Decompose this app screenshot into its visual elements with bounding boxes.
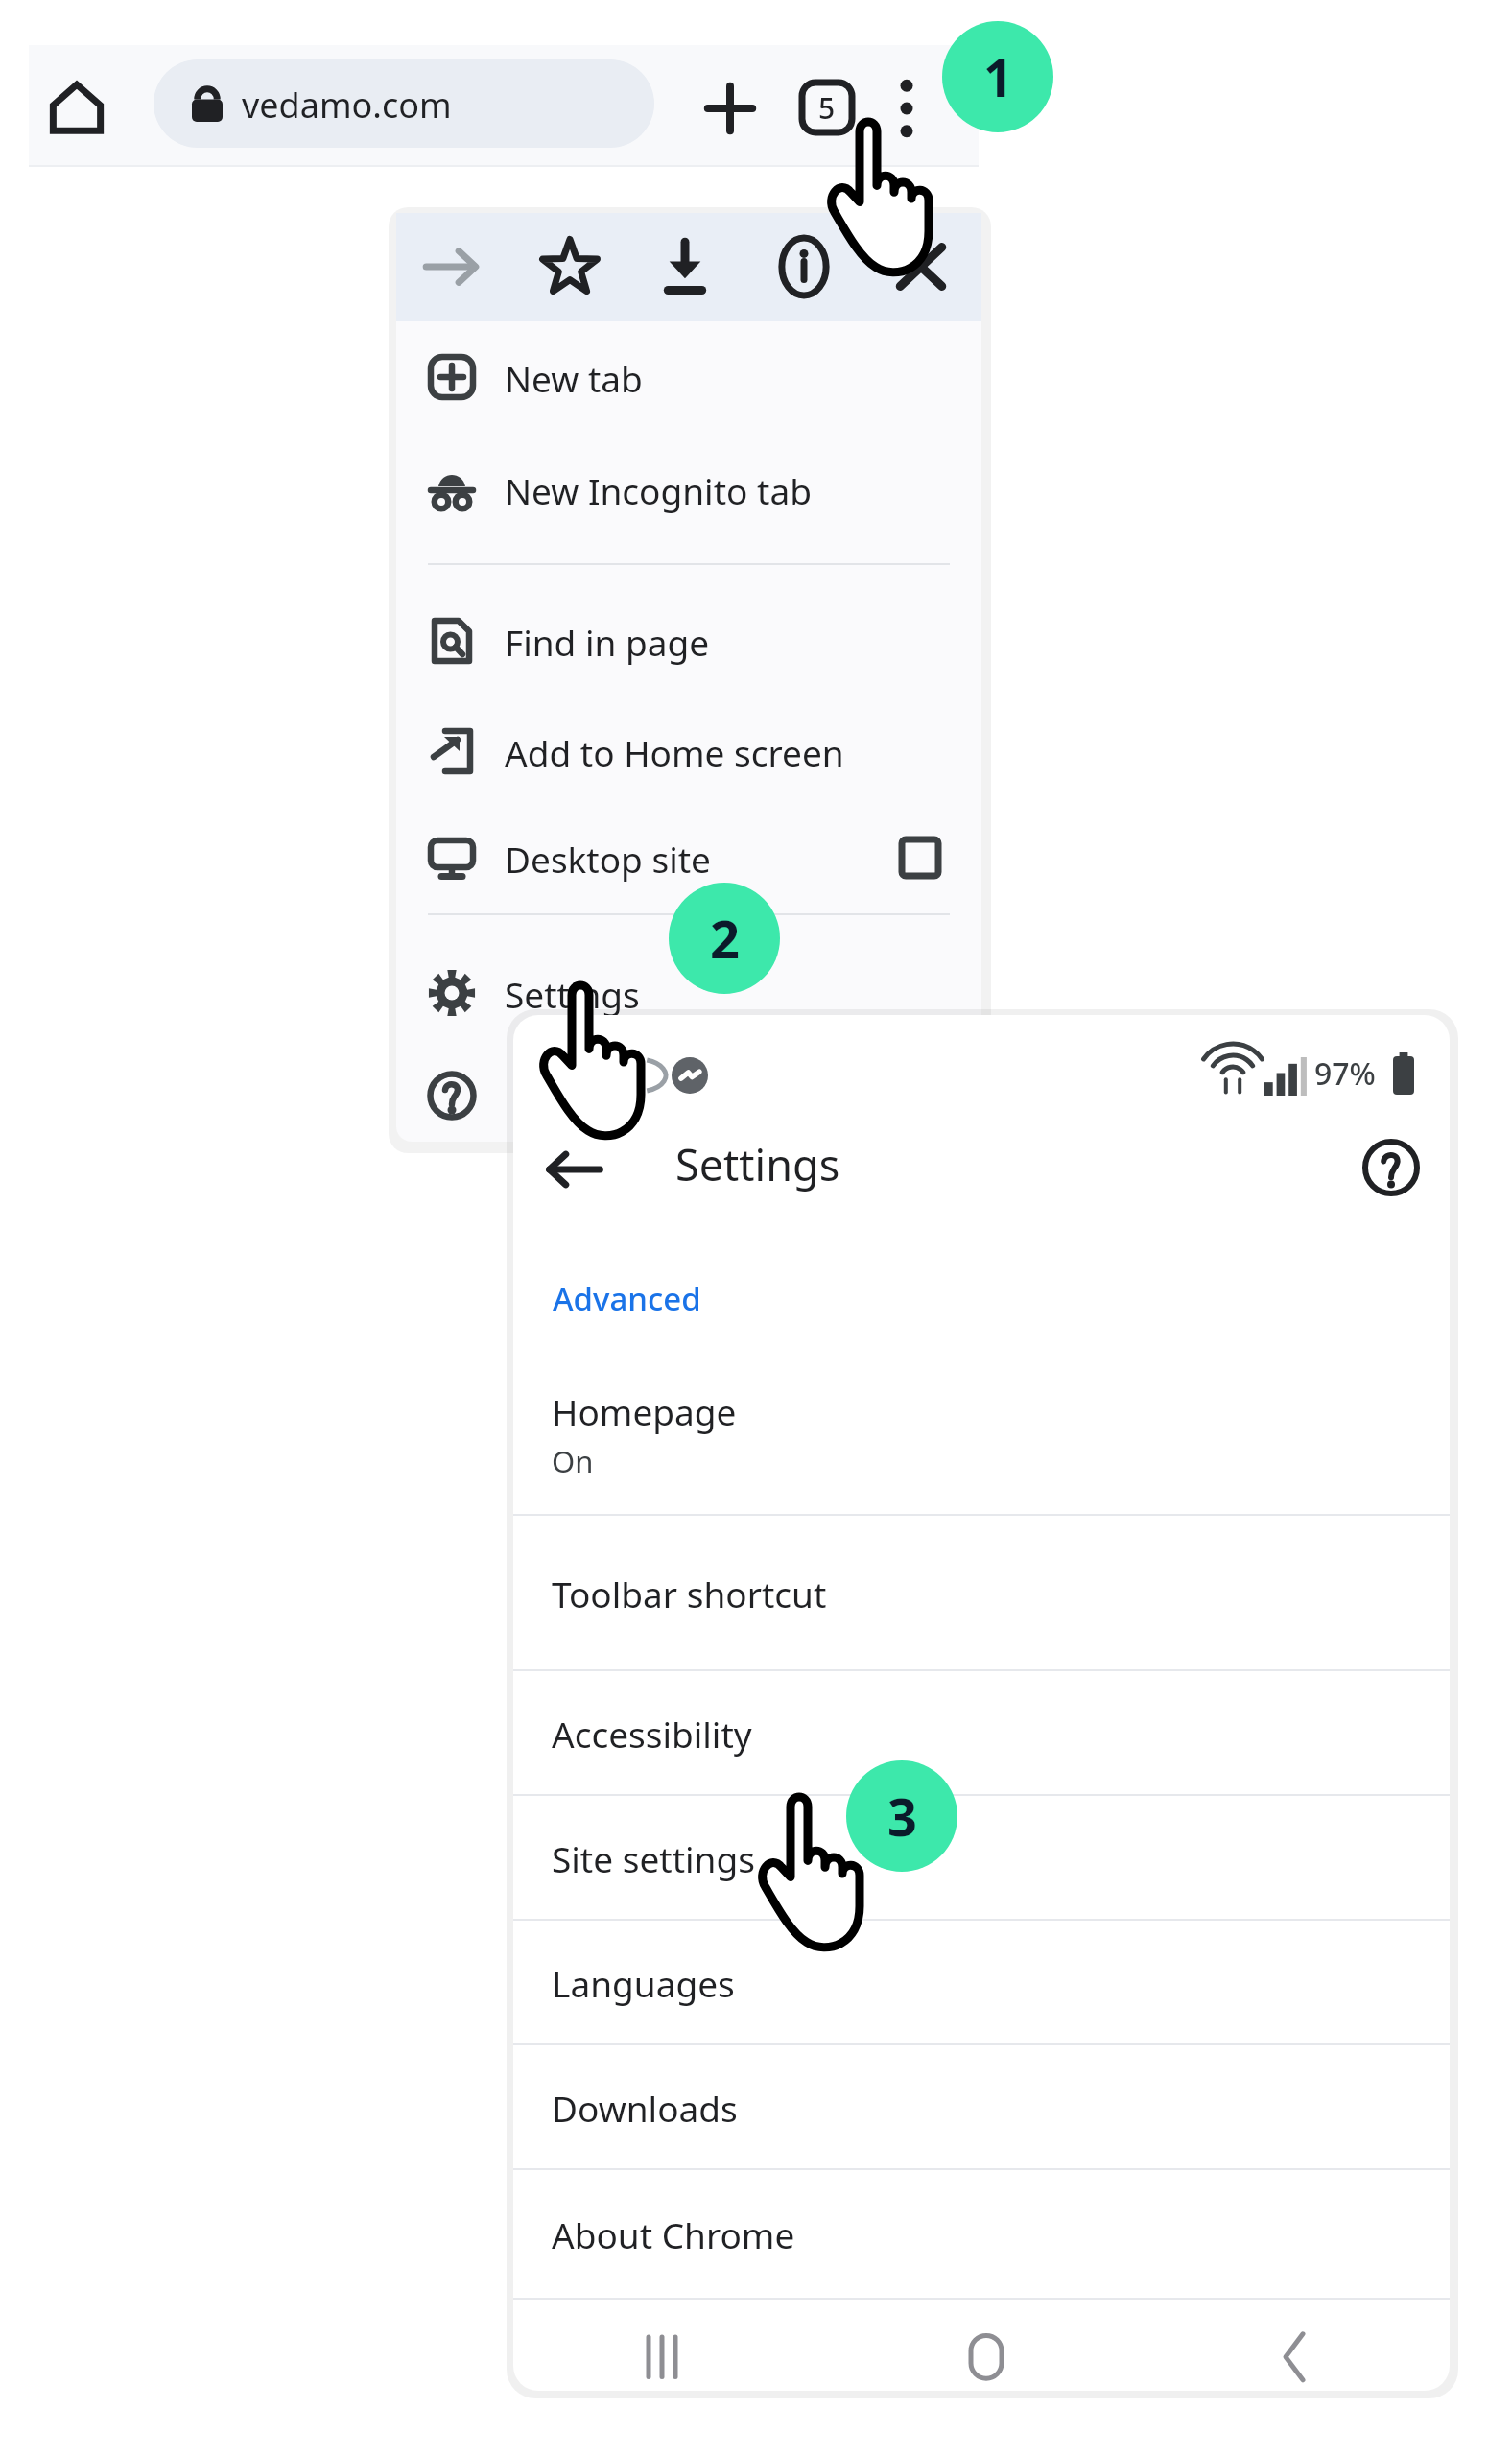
staticText: Site settings xyxy=(552,1834,755,1882)
staticText: 1 xyxy=(983,41,1013,112)
button[interactable]: Home xyxy=(50,82,104,133)
staticText: 3 xyxy=(887,1781,917,1852)
staticText: Desktop site xyxy=(505,835,711,883)
staticText: Add to Home screen xyxy=(505,728,844,776)
button[interactable]: 2 xyxy=(669,883,780,994)
staticText: About Chrome xyxy=(552,2210,795,2258)
button[interactable]: Add to Home screen xyxy=(396,700,981,802)
staticText: 2 xyxy=(710,903,740,974)
button[interactable]: Find in page xyxy=(396,590,981,692)
button[interactable]: New Incognito tab xyxy=(396,438,981,540)
button[interactable]: Settings xyxy=(396,942,981,1044)
staticText: Toolbar shortcut xyxy=(552,1570,827,1618)
staticText: On xyxy=(552,1441,594,1481)
button[interactable]: 3 xyxy=(846,1760,957,1872)
staticText: New Incognito tab xyxy=(505,466,812,514)
button[interactable]: New tab xyxy=(702,81,758,136)
button[interactable]: Close xyxy=(888,234,954,299)
button[interactable]: Page info xyxy=(771,234,837,299)
button[interactable] xyxy=(396,1045,981,1146)
button[interactable]: Download xyxy=(652,234,718,299)
button[interactable]: vedamo.com xyxy=(154,59,654,148)
staticText: 97% xyxy=(1314,1052,1376,1095)
button[interactable]: Downloads xyxy=(513,2043,1450,2168)
button[interactable]: Forward xyxy=(418,234,484,299)
button[interactable]: Home xyxy=(938,2322,1034,2398)
staticText: Downloads xyxy=(552,2084,738,2132)
button[interactable]: More options xyxy=(883,77,931,140)
staticText: New tab xyxy=(505,354,643,402)
button[interactable]: Accessibility xyxy=(513,1669,1450,1794)
button[interactable]: Bookmark xyxy=(537,234,602,299)
button[interactable]: Recents xyxy=(614,2322,710,2398)
button[interactable]: Homepage xyxy=(513,1353,1450,1514)
button[interactable]: Back xyxy=(543,1138,606,1201)
staticText: Settings xyxy=(675,1135,840,1193)
button[interactable]: New tab xyxy=(396,326,981,428)
button[interactable]: Help xyxy=(1362,1139,1420,1196)
staticText: Accessibility xyxy=(552,1710,752,1758)
button[interactable]: Toolbar shortcut xyxy=(513,1514,1450,1669)
staticText: Languages xyxy=(552,1959,735,2007)
button[interactable]: About Chrome xyxy=(513,2168,1450,2298)
button[interactable]: Desktop site xyxy=(396,807,981,909)
staticText: vedamo.com xyxy=(242,82,452,129)
staticText: Homepage xyxy=(552,1387,737,1435)
button[interactable]: Languages xyxy=(513,1919,1450,2043)
staticText: Advanced xyxy=(553,1277,701,1320)
staticText: Find in page xyxy=(505,618,710,666)
button[interactable]: 1 xyxy=(942,21,1053,132)
staticText: Settings xyxy=(505,970,640,1018)
button[interactable]: Tabs xyxy=(800,81,854,134)
button[interactable]: Site settings xyxy=(513,1794,1450,1919)
button[interactable]: Back xyxy=(1247,2322,1343,2398)
staticText: 5 xyxy=(818,88,836,128)
